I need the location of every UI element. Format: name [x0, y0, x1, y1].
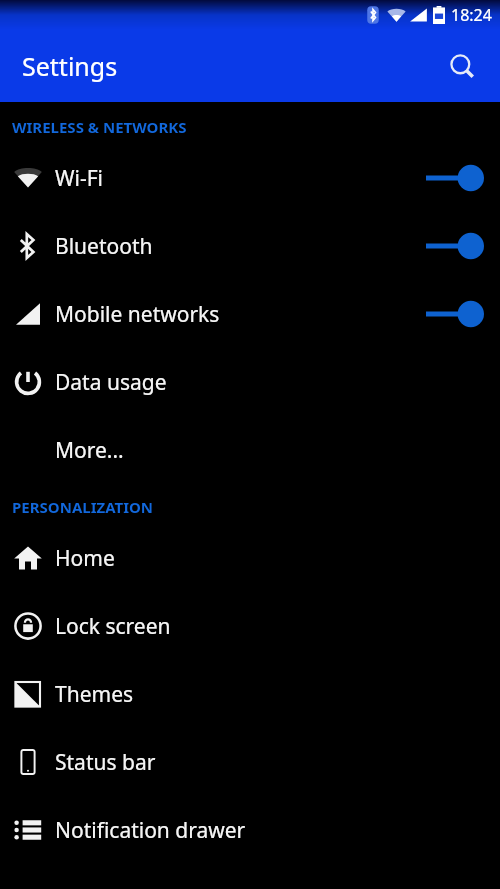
button[interactable]: Lock screen: [0, 592, 500, 660]
button[interactable]: Status bar: [0, 728, 500, 796]
button[interactable]: Search: [438, 42, 486, 90]
staticText: 18:24: [451, 4, 492, 26]
staticText: PERSONALIZATION: [12, 497, 154, 517]
staticText: Home: [55, 544, 484, 573]
button[interactable]: Mobile networks: [0, 280, 500, 348]
staticText: Settings: [22, 49, 118, 83]
staticText: Mobile networks: [55, 300, 410, 329]
button[interactable]: Notification drawer: [0, 796, 500, 864]
staticText: Bluetooth: [55, 232, 410, 261]
button[interactable]: Mobile networks toggle: [410, 280, 500, 348]
staticText: Lock screen: [55, 612, 484, 641]
button[interactable]: Bluetooth: [0, 212, 500, 280]
button[interactable]: Bluetooth toggle: [410, 212, 500, 280]
staticText: Data usage: [55, 368, 484, 397]
staticText: Themes: [55, 680, 484, 709]
button[interactable]: Home: [0, 524, 500, 592]
staticText: WIRELESS & NETWORKS: [12, 117, 187, 137]
button[interactable]: Themes: [0, 660, 500, 728]
staticText: Notification drawer: [55, 816, 484, 845]
button[interactable]: Wi-Fi toggle: [410, 144, 500, 212]
staticText: Wi-Fi: [55, 164, 410, 193]
staticText: Status bar: [55, 748, 484, 777]
staticText: More...: [55, 436, 484, 465]
button[interactable]: More...: [0, 416, 500, 484]
button[interactable]: Data usage: [0, 348, 500, 416]
button[interactable]: Wi-Fi: [0, 144, 500, 212]
